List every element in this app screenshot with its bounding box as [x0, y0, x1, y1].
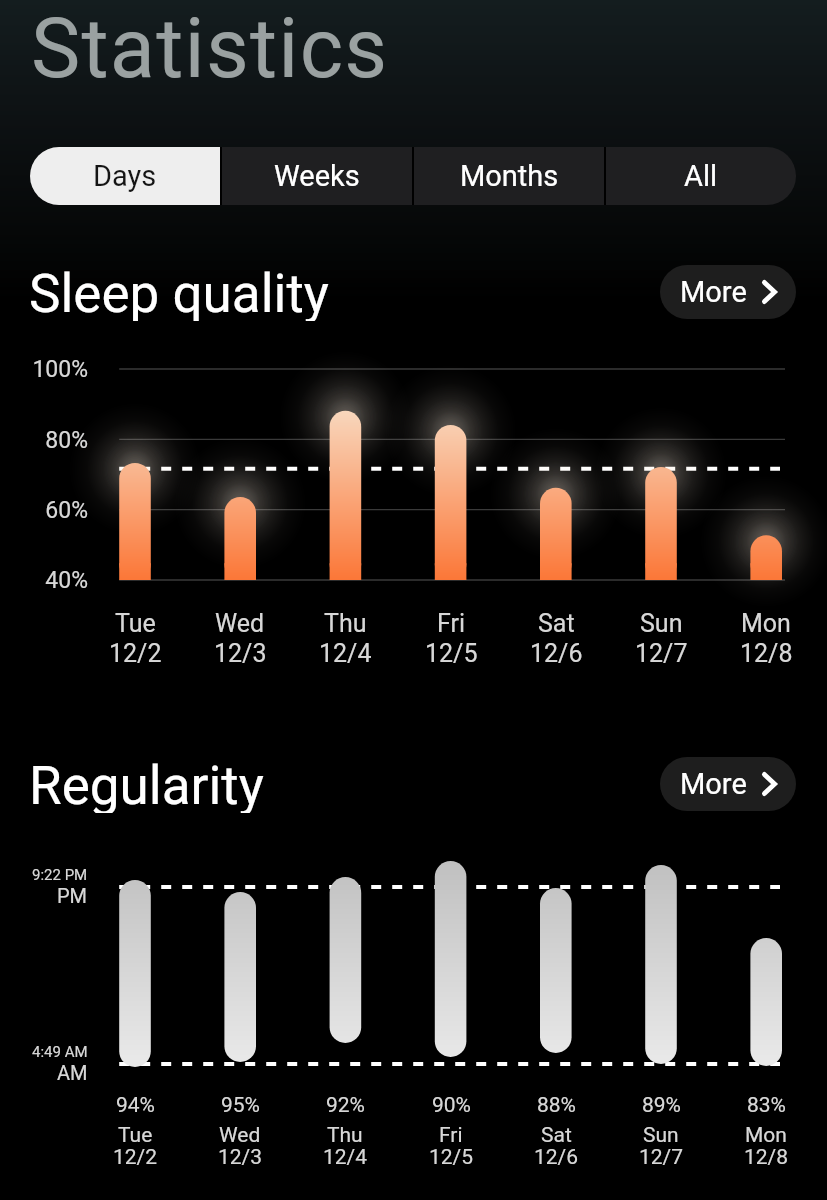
staticText: Tue — [115, 609, 156, 638]
staticText: Fri — [437, 609, 466, 638]
button[interactable]: Months — [414, 147, 604, 205]
staticText: 12/6 — [530, 639, 583, 668]
staticText: 83% — [747, 1093, 786, 1118]
staticText: Sun — [640, 609, 683, 638]
staticText: Sat — [538, 609, 575, 638]
staticText: Sun — [643, 1123, 679, 1148]
staticText: 12/4 — [319, 639, 372, 668]
staticText: Thu — [327, 1123, 363, 1148]
staticText: Sat — [541, 1123, 572, 1148]
staticText: 60% — [45, 497, 88, 524]
staticText: AM — [57, 1061, 88, 1084]
staticText: Thu — [324, 609, 367, 638]
staticText: Tue — [118, 1123, 153, 1148]
button[interactable]: All — [606, 147, 796, 205]
staticText: More — [680, 767, 747, 801]
staticText: 12/3 — [214, 639, 267, 668]
staticText: 12/8 — [740, 639, 793, 668]
staticText: 40% — [45, 567, 88, 594]
staticText: 9:22 PM — [32, 866, 88, 884]
staticText: Months — [460, 159, 559, 193]
button[interactable]: Weeks — [222, 147, 412, 205]
staticText: All — [684, 159, 718, 193]
staticText: 12/3 — [218, 1145, 263, 1170]
staticText: 94% — [116, 1093, 155, 1118]
button[interactable]: More — [660, 265, 796, 319]
staticText: Regularity — [29, 755, 264, 813]
staticText: More — [680, 275, 747, 309]
staticText: 88% — [537, 1093, 576, 1118]
staticText: 89% — [642, 1093, 681, 1118]
staticText: Mon — [741, 609, 791, 638]
staticText: 12/7 — [639, 1145, 684, 1170]
staticText: Fri — [439, 1123, 463, 1148]
staticText: 12/2 — [113, 1145, 158, 1170]
staticText: 12/5 — [425, 639, 478, 668]
staticText: PM — [57, 884, 88, 907]
staticText: 90% — [432, 1093, 471, 1118]
staticText: 12/8 — [744, 1145, 789, 1170]
staticText: 4:49 AM — [32, 1043, 88, 1061]
staticText: 100% — [32, 356, 88, 383]
staticText: 80% — [45, 427, 88, 454]
staticText: 12/7 — [635, 639, 688, 668]
staticText: 92% — [326, 1093, 365, 1118]
staticText: Weeks — [274, 159, 360, 193]
staticText: 95% — [221, 1093, 260, 1118]
staticText: 12/5 — [429, 1145, 474, 1170]
staticText: Days — [93, 159, 157, 193]
staticText: 12/6 — [534, 1145, 579, 1170]
staticText: Statistics — [31, 0, 389, 97]
staticText: 12/2 — [109, 639, 162, 668]
button[interactable]: More — [660, 757, 796, 811]
staticText: Wed — [215, 609, 265, 638]
button[interactable]: Days — [30, 147, 220, 205]
staticText: 12/4 — [323, 1145, 368, 1170]
staticText: Sleep quality — [29, 263, 329, 321]
staticText: Mon — [745, 1123, 787, 1148]
staticText: Wed — [219, 1123, 261, 1148]
